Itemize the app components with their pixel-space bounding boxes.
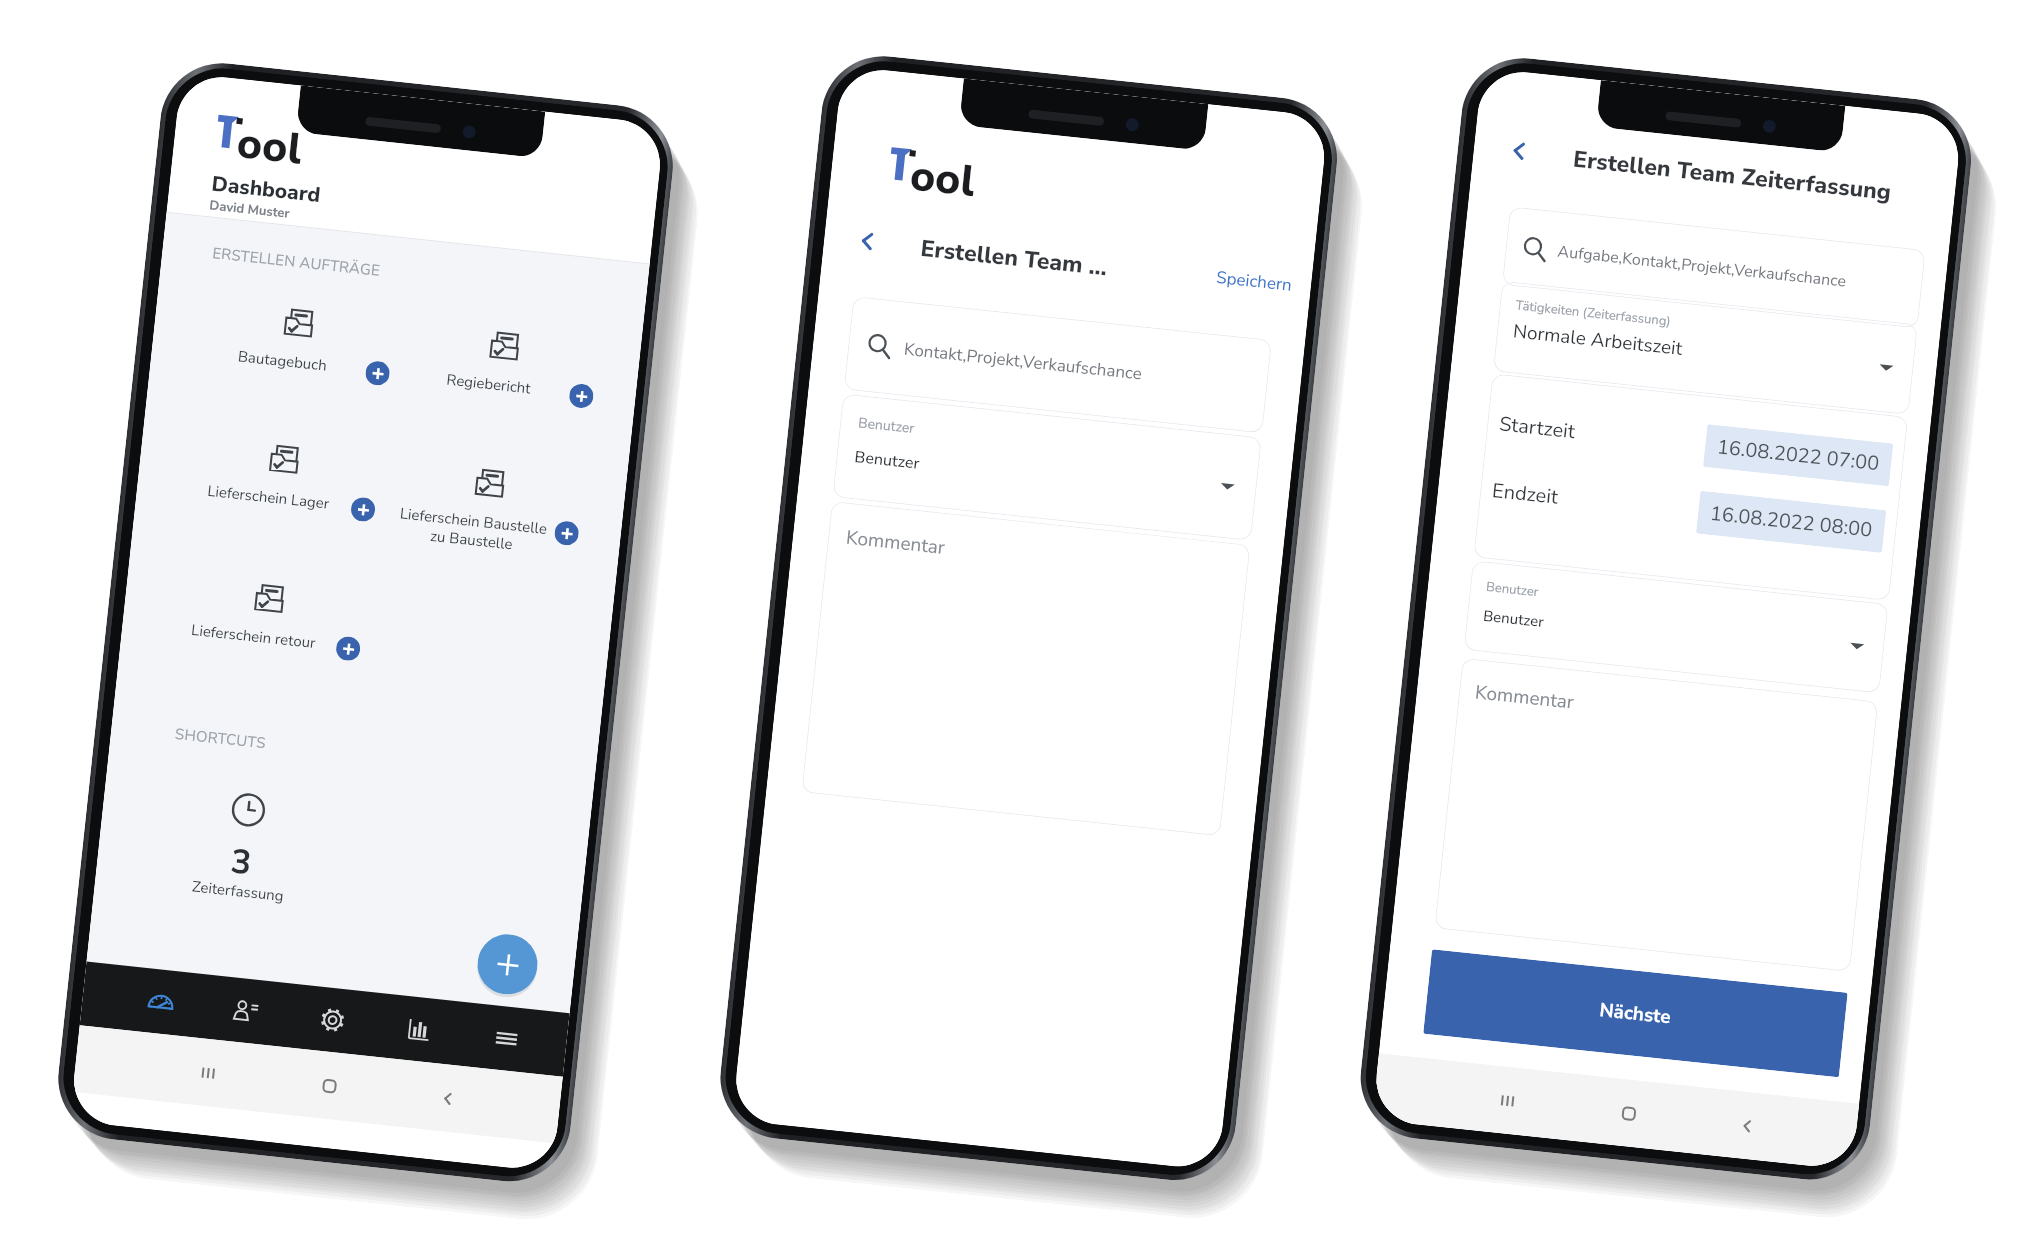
- staticText: ool: [235, 114, 305, 169]
- staticText: David Muster: [208, 196, 291, 223]
- button[interactable]: Einstellungen: [305, 986, 360, 1054]
- staticText: Tätigkeiten (Zeiterfassung): [1515, 296, 1672, 331]
- staticText: 16.08.2022 08:00: [1709, 500, 1874, 544]
- staticText: Kommentar: [1474, 679, 1576, 716]
- button[interactable]: Kommentar: [1434, 658, 1878, 972]
- button[interactable]: 16.08.2022 07:00: [1716, 433, 1881, 477]
- button[interactable]: Hinzufügen: [568, 383, 594, 409]
- staticText: ERSTELLEN AUFTRÄGE: [211, 243, 382, 281]
- button[interactable]: Neu erstellen: [474, 931, 540, 997]
- button[interactable]: Nächste: [1423, 949, 1848, 1077]
- button[interactable]: Berichte: [392, 995, 446, 1064]
- staticText: Regiebericht: [445, 370, 532, 398]
- staticText: Lieferschein retour: [190, 620, 317, 653]
- button[interactable]: Startseite: [1604, 1077, 1654, 1149]
- button[interactable]: Benutzer: [1463, 560, 1889, 693]
- staticText: Bautagebuch: [236, 346, 328, 376]
- button[interactable]: Kontakt,Projekt,Verkaufschance: [844, 296, 1272, 433]
- staticText: Normale Arbeitszeit: [1512, 318, 1683, 362]
- button[interactable]: Zurück: [1502, 134, 1535, 167]
- staticText: SHORTCUTS: [174, 724, 267, 753]
- button[interactable]: Speichern: [1215, 266, 1293, 297]
- staticText: 16.08.2022 07:00: [1716, 433, 1881, 477]
- button[interactable]: Zurück: [1722, 1090, 1773, 1161]
- button[interactable]: Zurück: [422, 1063, 473, 1134]
- staticText: Aufgabe,Kontakt,Projekt,Verkaufschance: [1556, 240, 1847, 293]
- button[interactable]: Hinzufügen: [350, 496, 376, 523]
- staticText: Kommentar: [845, 525, 947, 561]
- button[interactable]: Startseite: [304, 1050, 355, 1121]
- button[interactable]: Menü: [479, 1004, 534, 1073]
- staticText: Nächste: [1598, 997, 1672, 1030]
- button[interactable]: [267, 442, 300, 475]
- button[interactable]: Letzte Apps: [1482, 1065, 1533, 1136]
- staticText: Benutzer: [1485, 578, 1540, 601]
- staticText: Dashboard: [210, 170, 322, 210]
- staticText: Startzeit: [1498, 410, 1576, 445]
- staticText: Kontakt,Projekt,Verkaufschance: [903, 338, 1143, 386]
- button[interactable]: Letzte Apps: [183, 1037, 234, 1108]
- button[interactable]: Benutzer: [832, 393, 1262, 541]
- staticText: Benutzer: [1482, 606, 1545, 632]
- staticText: Benutzer: [853, 446, 921, 475]
- button[interactable]: [488, 329, 521, 362]
- button[interactable]: [473, 466, 506, 499]
- button[interactable]: Startzeit: [1473, 373, 1908, 601]
- button[interactable]: Hinzufügen: [553, 520, 580, 546]
- button[interactable]: Aufgabe,Kontakt,Projekt,Verkaufschance: [1502, 206, 1926, 328]
- button[interactable]: Hinzufügen: [335, 635, 361, 662]
- staticText: Endzeit: [1491, 477, 1560, 511]
- staticText: Erstellen Team ...: [919, 233, 1109, 283]
- button[interactable]: Zurück: [851, 225, 884, 258]
- staticText: Speichern: [1215, 266, 1293, 297]
- staticText: Erstellen Team Zeiterfassung: [1572, 144, 1893, 208]
- button[interactable]: Tätigkeiten (Zeiterfassung): [1493, 281, 1918, 415]
- staticText: Benutzer: [857, 413, 916, 438]
- button[interactable]: Hinzufügen: [364, 360, 391, 386]
- button[interactable]: Kommentar: [801, 501, 1251, 836]
- staticText: Lieferschein Baustelle zu Baustelle: [397, 503, 548, 558]
- staticText: 3: [228, 838, 254, 886]
- staticText: Lieferschein Lager: [206, 481, 330, 514]
- button[interactable]: [253, 581, 286, 614]
- button[interactable]: [282, 306, 315, 339]
- button[interactable]: 16.08.2022 08:00: [1709, 500, 1874, 544]
- staticText: Zeiterfassung: [191, 876, 285, 906]
- button[interactable]: Dashboard: [133, 967, 188, 1036]
- staticText: ool: [908, 146, 978, 201]
- button[interactable]: Kontakte: [218, 976, 272, 1045]
